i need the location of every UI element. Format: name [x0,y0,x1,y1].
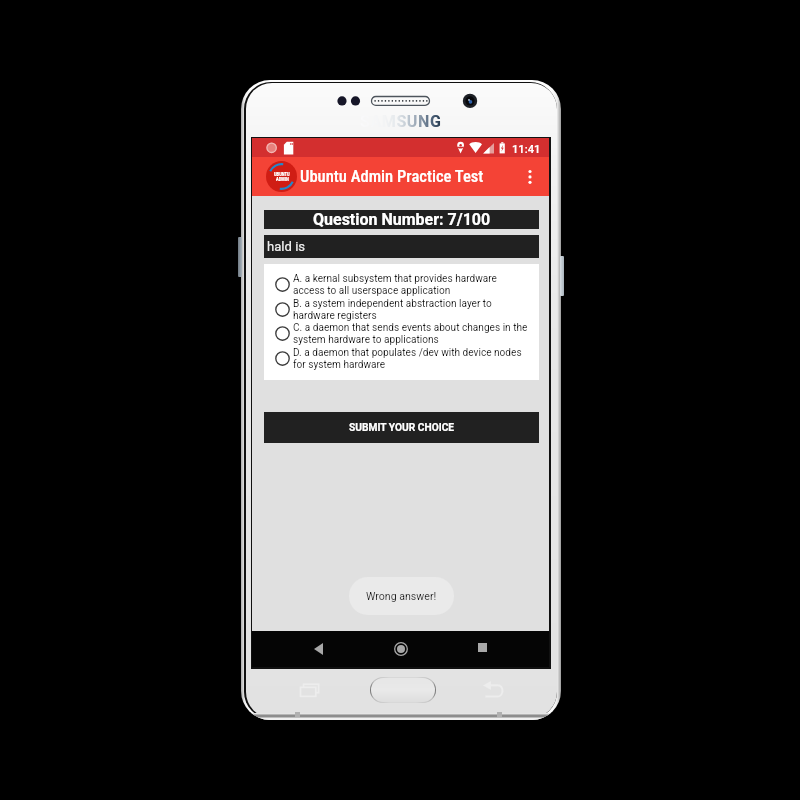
button[interactable]: Home [379,631,423,667]
staticText: A. a kernal subsystem that provides hard… [293,273,497,297]
staticText: hald is [267,239,306,254]
button[interactable]: Back [296,631,340,667]
staticText: Question Number: 7/100 [313,210,491,229]
button[interactable]: C. a daemon that sends events about chan… [264,322,539,346]
button[interactable]: SUBMIT YOUR CHOICE [264,412,539,443]
button[interactable]: D. a daemon that populates /dev with dev… [264,347,539,371]
button[interactable]: B. a system independent abstraction laye… [264,298,539,322]
staticText: C. a daemon that sends events about chan… [293,322,528,346]
button[interactable]: A. a kernal subsystem that provides hard… [264,273,539,297]
staticText: SAMSUNG [360,112,442,131]
staticText: Ubuntu Admin Practice Test [300,167,484,186]
staticText: B. a system independent abstraction laye… [293,298,492,322]
staticText: Wrong answer! [366,590,437,602]
staticText: D. a daemon that populates /dev with dev… [293,347,522,371]
button[interactable]: More options [515,162,545,192]
staticText: ADMIN [276,177,289,181]
button[interactable]: Home [371,678,435,702]
staticText: 11:41 [512,143,541,156]
staticText: SUBMIT YOUR CHOICE [349,422,455,434]
staticText: UBUNTU [274,172,290,177]
button[interactable]: Recent apps [460,631,504,667]
